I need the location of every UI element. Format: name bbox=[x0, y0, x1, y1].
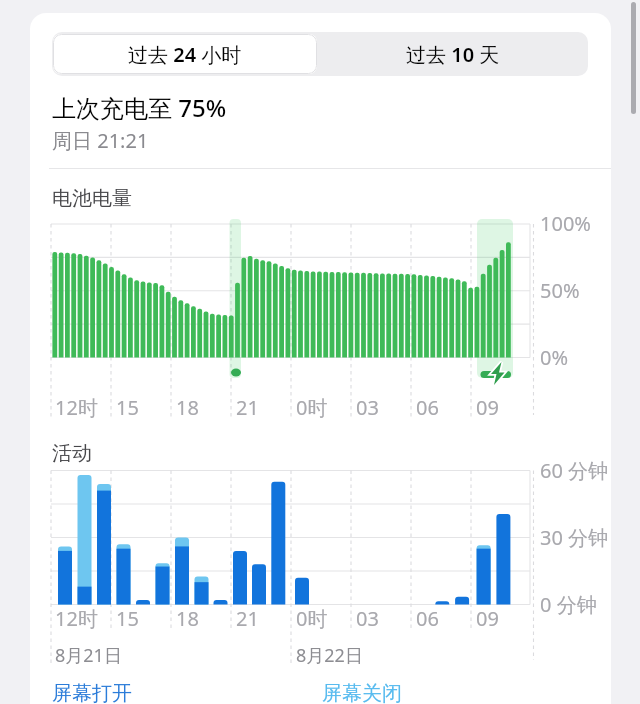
staticText: 30 分钟 bbox=[540, 524, 609, 551]
staticText: 15 bbox=[116, 605, 139, 632]
staticText: 06 bbox=[416, 394, 439, 421]
staticText: 15 bbox=[116, 394, 139, 421]
button[interactable]: 过去 24 小时 bbox=[52, 32, 318, 76]
staticText: 屏幕关闭 bbox=[322, 681, 402, 704]
staticText: 电池电量 bbox=[52, 186, 132, 211]
staticText: 09 bbox=[476, 394, 499, 421]
staticText: 0 分钟 bbox=[540, 591, 597, 618]
staticText: 100% bbox=[540, 210, 591, 237]
staticText: 03 bbox=[356, 605, 379, 632]
staticText: 8月21日 bbox=[55, 643, 122, 668]
staticText: 过去 10 天 bbox=[406, 41, 500, 68]
staticText: 屏幕打开 bbox=[52, 681, 132, 704]
staticText: 03 bbox=[356, 394, 379, 421]
staticText: 12时 bbox=[55, 394, 98, 421]
staticText: 06 bbox=[416, 605, 439, 632]
staticText: 21 bbox=[236, 394, 259, 421]
staticText: 18 bbox=[176, 605, 199, 632]
staticText: 09 bbox=[476, 605, 499, 632]
staticText: 周日 21:21 bbox=[52, 127, 149, 154]
staticText: 50% bbox=[540, 277, 580, 304]
staticText: 8月22日 bbox=[296, 643, 363, 668]
staticText: 0% bbox=[540, 344, 569, 371]
button[interactable]: 过去 10 天 bbox=[318, 32, 588, 76]
staticText: 12时 bbox=[55, 605, 98, 632]
staticText: 18 bbox=[176, 394, 199, 421]
staticText: 上次充电至 75% bbox=[52, 91, 227, 124]
button[interactable]: 屏幕关闭 bbox=[322, 681, 402, 704]
staticText: 21 bbox=[236, 605, 259, 632]
staticText: 0时 bbox=[296, 605, 328, 632]
staticText: 活动 bbox=[52, 441, 92, 466]
staticText: 0时 bbox=[296, 394, 328, 421]
staticText: 过去 24 小时 bbox=[128, 41, 242, 68]
staticText: 60 分钟 bbox=[540, 457, 609, 484]
button[interactable]: 屏幕打开 bbox=[52, 681, 132, 704]
